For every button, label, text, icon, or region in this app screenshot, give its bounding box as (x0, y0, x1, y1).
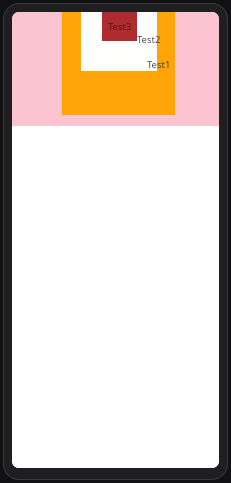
staticText: Test2 (137, 33, 161, 46)
staticText: Test1 (147, 58, 171, 71)
staticText: Test3 (108, 20, 132, 33)
button[interactable]: Test3 container (102, 12, 137, 41)
button[interactable]: Test1 container (62, 12, 175, 115)
button[interactable]: Test2 container (81, 12, 157, 71)
